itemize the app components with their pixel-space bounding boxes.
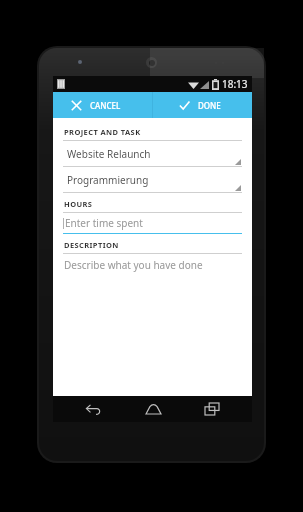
staticText: 18:13 bbox=[222, 77, 248, 91]
staticText: CANCEL bbox=[90, 100, 121, 111]
button[interactable]: Website Relaunch bbox=[53, 141, 252, 166]
button[interactable]: Enter time spent bbox=[53, 213, 252, 233]
staticText: Programmierung bbox=[67, 173, 149, 187]
button[interactable]: CANCEL bbox=[53, 92, 152, 118]
staticText: DONE bbox=[198, 100, 221, 111]
button[interactable]: Programmierung bbox=[53, 167, 252, 192]
button[interactable]: Describe what you have done bbox=[53, 254, 252, 276]
button[interactable]: DONE bbox=[153, 92, 252, 118]
staticText: Website Relaunch bbox=[67, 147, 151, 161]
button[interactable]: Back bbox=[73, 396, 113, 422]
staticText: Enter time spent bbox=[65, 216, 143, 230]
staticText: Describe what you have done bbox=[64, 258, 203, 272]
button[interactable]: Recent apps bbox=[192, 396, 232, 422]
staticText: DESCRIPTION bbox=[64, 240, 119, 250]
staticText: PROJECT AND TASK bbox=[64, 127, 141, 137]
button[interactable]: Home bbox=[133, 396, 173, 422]
staticText: HOURS bbox=[64, 199, 93, 209]
